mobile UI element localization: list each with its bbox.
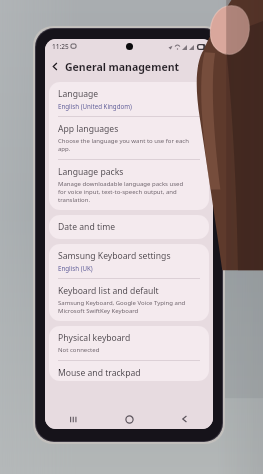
staticText: General management: [65, 60, 180, 74]
button[interactable]: Samsung Keyboard settings: [49, 244, 209, 278]
staticText: Manage downloadable language packs used …: [58, 180, 184, 204]
button[interactable]: Date and time: [49, 215, 209, 239]
button[interactable]: Language packs: [49, 160, 209, 210]
staticText: Language: [58, 88, 99, 100]
staticText: Choose the language you want to use for …: [58, 137, 189, 153]
button[interactable]: Back: [157, 409, 213, 429]
staticText: English (United Kingdom): [58, 102, 132, 110]
staticText: Mouse and trackpad: [58, 367, 141, 379]
staticText: 11:25: [52, 42, 69, 51]
staticText: Samsung Keyboard settings: [58, 250, 171, 262]
button[interactable]: Mouse and trackpad: [49, 361, 209, 381]
button[interactable]: Physical keyboard: [49, 326, 209, 360]
staticText: Keyboard list and default: [58, 285, 159, 297]
staticText: Not connected: [58, 346, 100, 354]
staticText: Date and time: [58, 221, 116, 233]
staticText: English (UK): [58, 264, 93, 272]
button[interactable]: Navigate up: [48, 59, 63, 74]
button[interactable]: Home: [101, 409, 157, 429]
staticText: Language packs: [58, 166, 124, 178]
button[interactable]: Recent apps: [45, 409, 101, 429]
button[interactable]: App languages: [49, 117, 209, 159]
staticText: Physical keyboard: [58, 332, 131, 344]
button[interactable]: Search: [194, 59, 210, 75]
staticText: Samsung Keyboard, Google Voice Typing an…: [58, 299, 186, 315]
button[interactable]: Language: [49, 82, 209, 116]
staticText: App languages: [58, 123, 119, 135]
button[interactable]: Keyboard list and default: [49, 279, 209, 321]
